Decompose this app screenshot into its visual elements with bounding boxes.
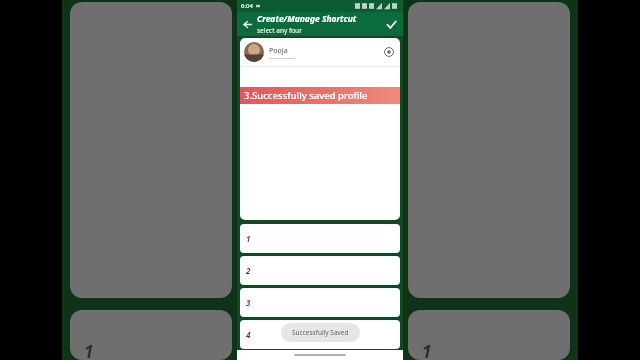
staticText: 4 [246, 329, 251, 340]
button[interactable]: 1 [240, 224, 400, 253]
staticText: 2 [246, 265, 251, 276]
staticText: Create/Manage Shortcut [257, 13, 357, 25]
button[interactable]: Options [382, 45, 396, 59]
staticText: 3 [246, 297, 251, 308]
staticText: Pooja [269, 46, 288, 56]
staticText: Successfully Saved [292, 328, 349, 337]
staticText: 1 [84, 340, 94, 360]
button[interactable]: Back [237, 14, 257, 34]
button[interactable]: Save [379, 12, 403, 36]
button[interactable]: 4 [240, 320, 400, 349]
button[interactable]: Pooja [240, 38, 400, 66]
staticText: 1 [246, 233, 251, 244]
button[interactable]: 2 [240, 256, 400, 285]
staticText: select any four [257, 26, 302, 35]
staticText: 1 [422, 340, 432, 360]
button[interactable]: 3 [240, 288, 400, 317]
staticText: 3.Successfully saved profile [244, 89, 368, 102]
staticText: 6:04 [241, 2, 253, 10]
